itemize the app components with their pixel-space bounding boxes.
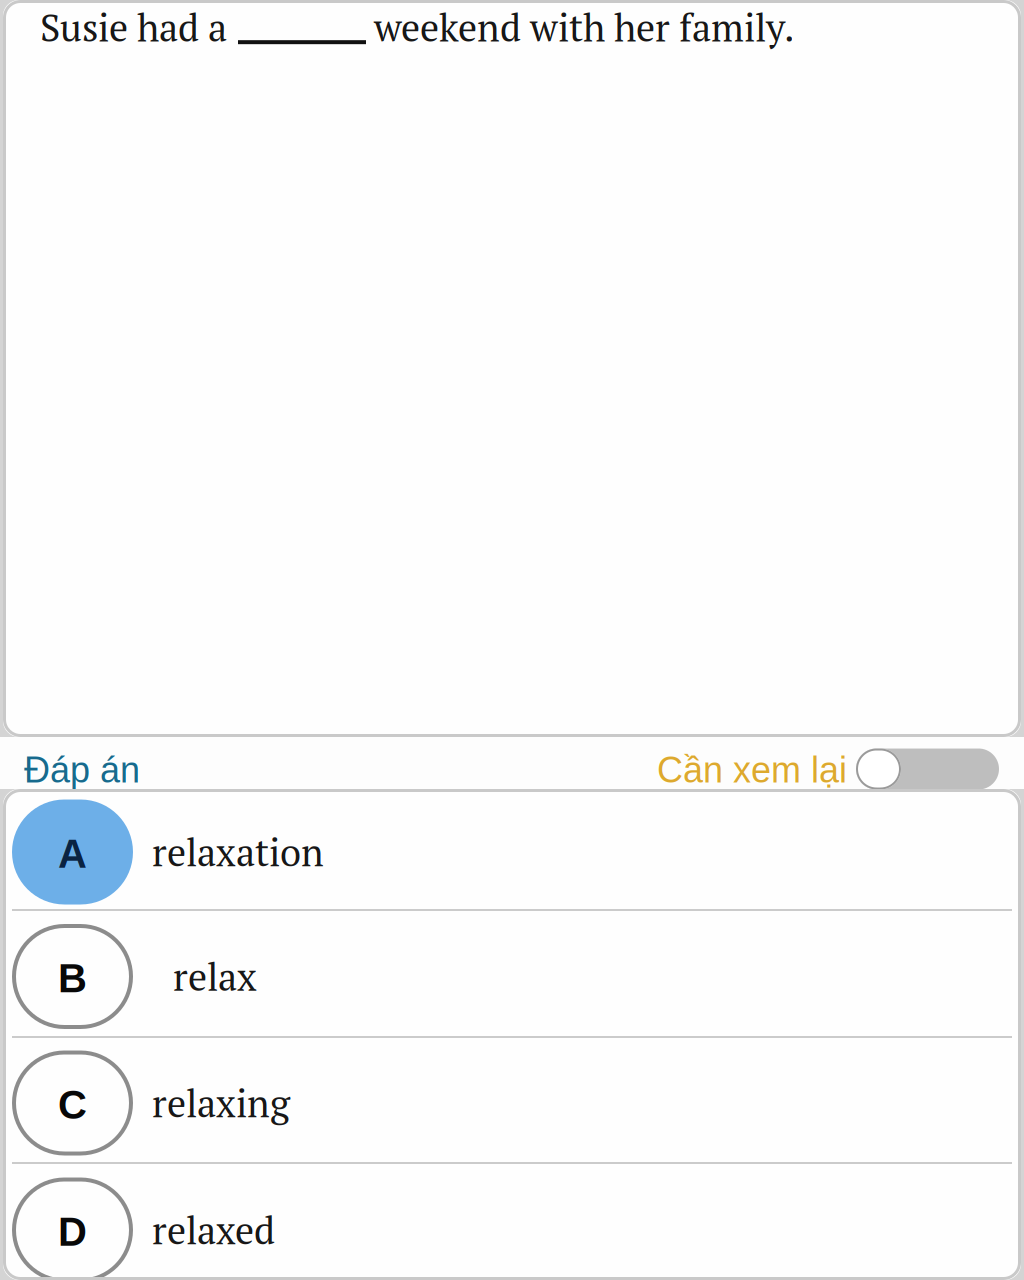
- staticText: B: [58, 956, 87, 1001]
- staticText: D: [58, 1210, 87, 1254]
- button[interactable]: A: [3, 789, 1021, 909]
- button[interactable]: B: [3, 911, 1021, 1036]
- staticText: Đáp án: [24, 750, 140, 790]
- staticText: Susie had a: [40, 2, 227, 52]
- button[interactable]: Cần xem lại: [847, 742, 1024, 783]
- staticText: Cần xem lại: [657, 750, 847, 790]
- staticText: weekend with her family.: [374, 2, 795, 52]
- staticText: relaxing: [152, 1078, 290, 1128]
- staticText: relaxed: [152, 1205, 275, 1255]
- button[interactable]: C: [3, 1038, 1021, 1162]
- staticText: C: [58, 1083, 87, 1127]
- staticText: A: [58, 832, 87, 876]
- staticText: relax: [173, 951, 257, 1002]
- button[interactable]: D: [3, 1164, 1021, 1280]
- staticText: relaxation: [152, 827, 324, 877]
